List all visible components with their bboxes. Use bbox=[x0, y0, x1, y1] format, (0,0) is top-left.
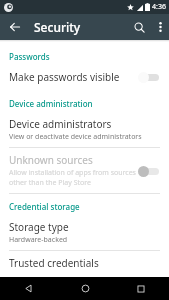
other: Toggle bbox=[138, 71, 160, 83]
button[interactable]: Recent apps bbox=[113, 277, 169, 300]
button[interactable]: Search bbox=[127, 14, 151, 40]
button[interactable]: Back bbox=[0, 14, 30, 40]
staticText: Make passwords visible bbox=[9, 70, 138, 84]
button[interactable]: Unknown sources bbox=[0, 148, 169, 193]
button[interactable]: Trusted credentials bbox=[0, 251, 169, 277]
staticText: 4:36 bbox=[152, 2, 166, 12]
staticText: Hardware-backed bbox=[9, 235, 68, 245]
staticText: Device administration bbox=[9, 98, 93, 109]
button[interactable]: Make passwords visible bbox=[0, 65, 169, 89]
staticText: Allow installation of apps from sources bbox=[9, 168, 136, 178]
other: Toggle bbox=[138, 165, 160, 177]
staticText: View or deactivate device administrators bbox=[9, 132, 142, 142]
button[interactable]: Device administrators bbox=[0, 112, 169, 147]
staticText: Passwords bbox=[9, 51, 50, 62]
button[interactable]: Storage type bbox=[0, 215, 169, 250]
button[interactable]: Home bbox=[57, 277, 113, 300]
button[interactable]: Back bbox=[0, 277, 57, 300]
button[interactable]: More options bbox=[151, 14, 169, 40]
staticText: Trusted credentials bbox=[9, 256, 99, 270]
staticText: Credential storage bbox=[9, 201, 80, 212]
staticText: Storage type bbox=[9, 220, 69, 234]
staticText: Security bbox=[34, 19, 81, 35]
staticText: other than the Play Store bbox=[9, 178, 91, 188]
staticText: Device administrators bbox=[9, 117, 112, 131]
staticText: Unknown sources bbox=[9, 153, 93, 167]
